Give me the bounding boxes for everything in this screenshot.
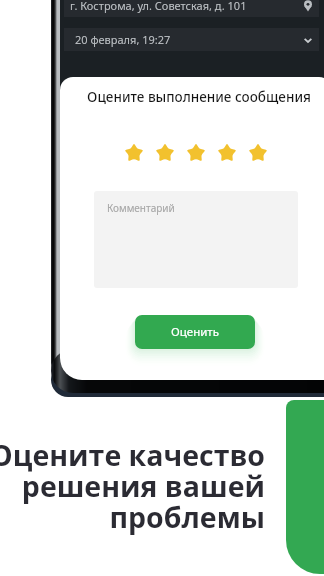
button[interactable]: Rate 3	[186, 141, 217, 163]
staticText: Оцените выполнение сообщения	[63, 88, 324, 106]
staticText: Оценить	[171, 324, 219, 340]
button[interactable]: Комментарий	[94, 191, 298, 288]
other: Expand	[302, 34, 314, 46]
button[interactable]: Rate 1	[124, 141, 155, 163]
button[interactable]: г. Кострома, ул. Советская, д. 101	[64, 0, 319, 17]
button[interactable]: Rate 4	[217, 141, 248, 163]
other: Location	[302, 0, 314, 12]
button[interactable]: Rate 2	[155, 141, 186, 163]
staticText: Оцените качество решения вашей проблемы	[0, 436, 265, 537]
staticText: г. Кострома, ул. Советская, д. 101	[70, 0, 247, 13]
button[interactable]: 20 февраля, 19:27	[64, 28, 319, 51]
button[interactable]: Rate 5	[248, 141, 279, 163]
staticText: 20 февраля, 19:27	[75, 32, 171, 47]
button[interactable]: Оценить	[135, 315, 255, 349]
staticText: Комментарий	[107, 201, 175, 215]
